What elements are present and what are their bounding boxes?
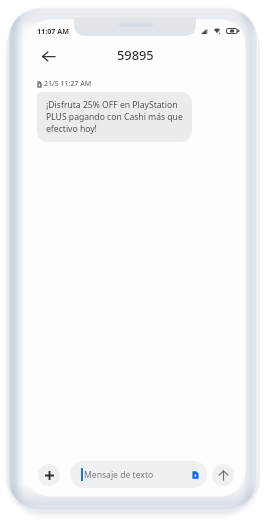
button[interactable]: Send xyxy=(212,464,234,486)
button[interactable]: Mensaje de texto xyxy=(70,461,207,488)
staticText: Mensaje de texto xyxy=(84,469,192,481)
button[interactable]: ¡Disfruta 25% OFF en PlayStation PLUS pa… xyxy=(37,92,192,142)
staticText: 59895 xyxy=(117,46,154,63)
staticText: 11:07 AM xyxy=(37,26,70,36)
button[interactable]: Back xyxy=(38,45,60,67)
button[interactable]: Add attachment xyxy=(38,464,60,486)
staticText: ¡Disfruta 25% OFF en PlayStation PLUS pa… xyxy=(46,99,184,135)
staticText: 21/5 11:27 AM xyxy=(44,79,92,89)
